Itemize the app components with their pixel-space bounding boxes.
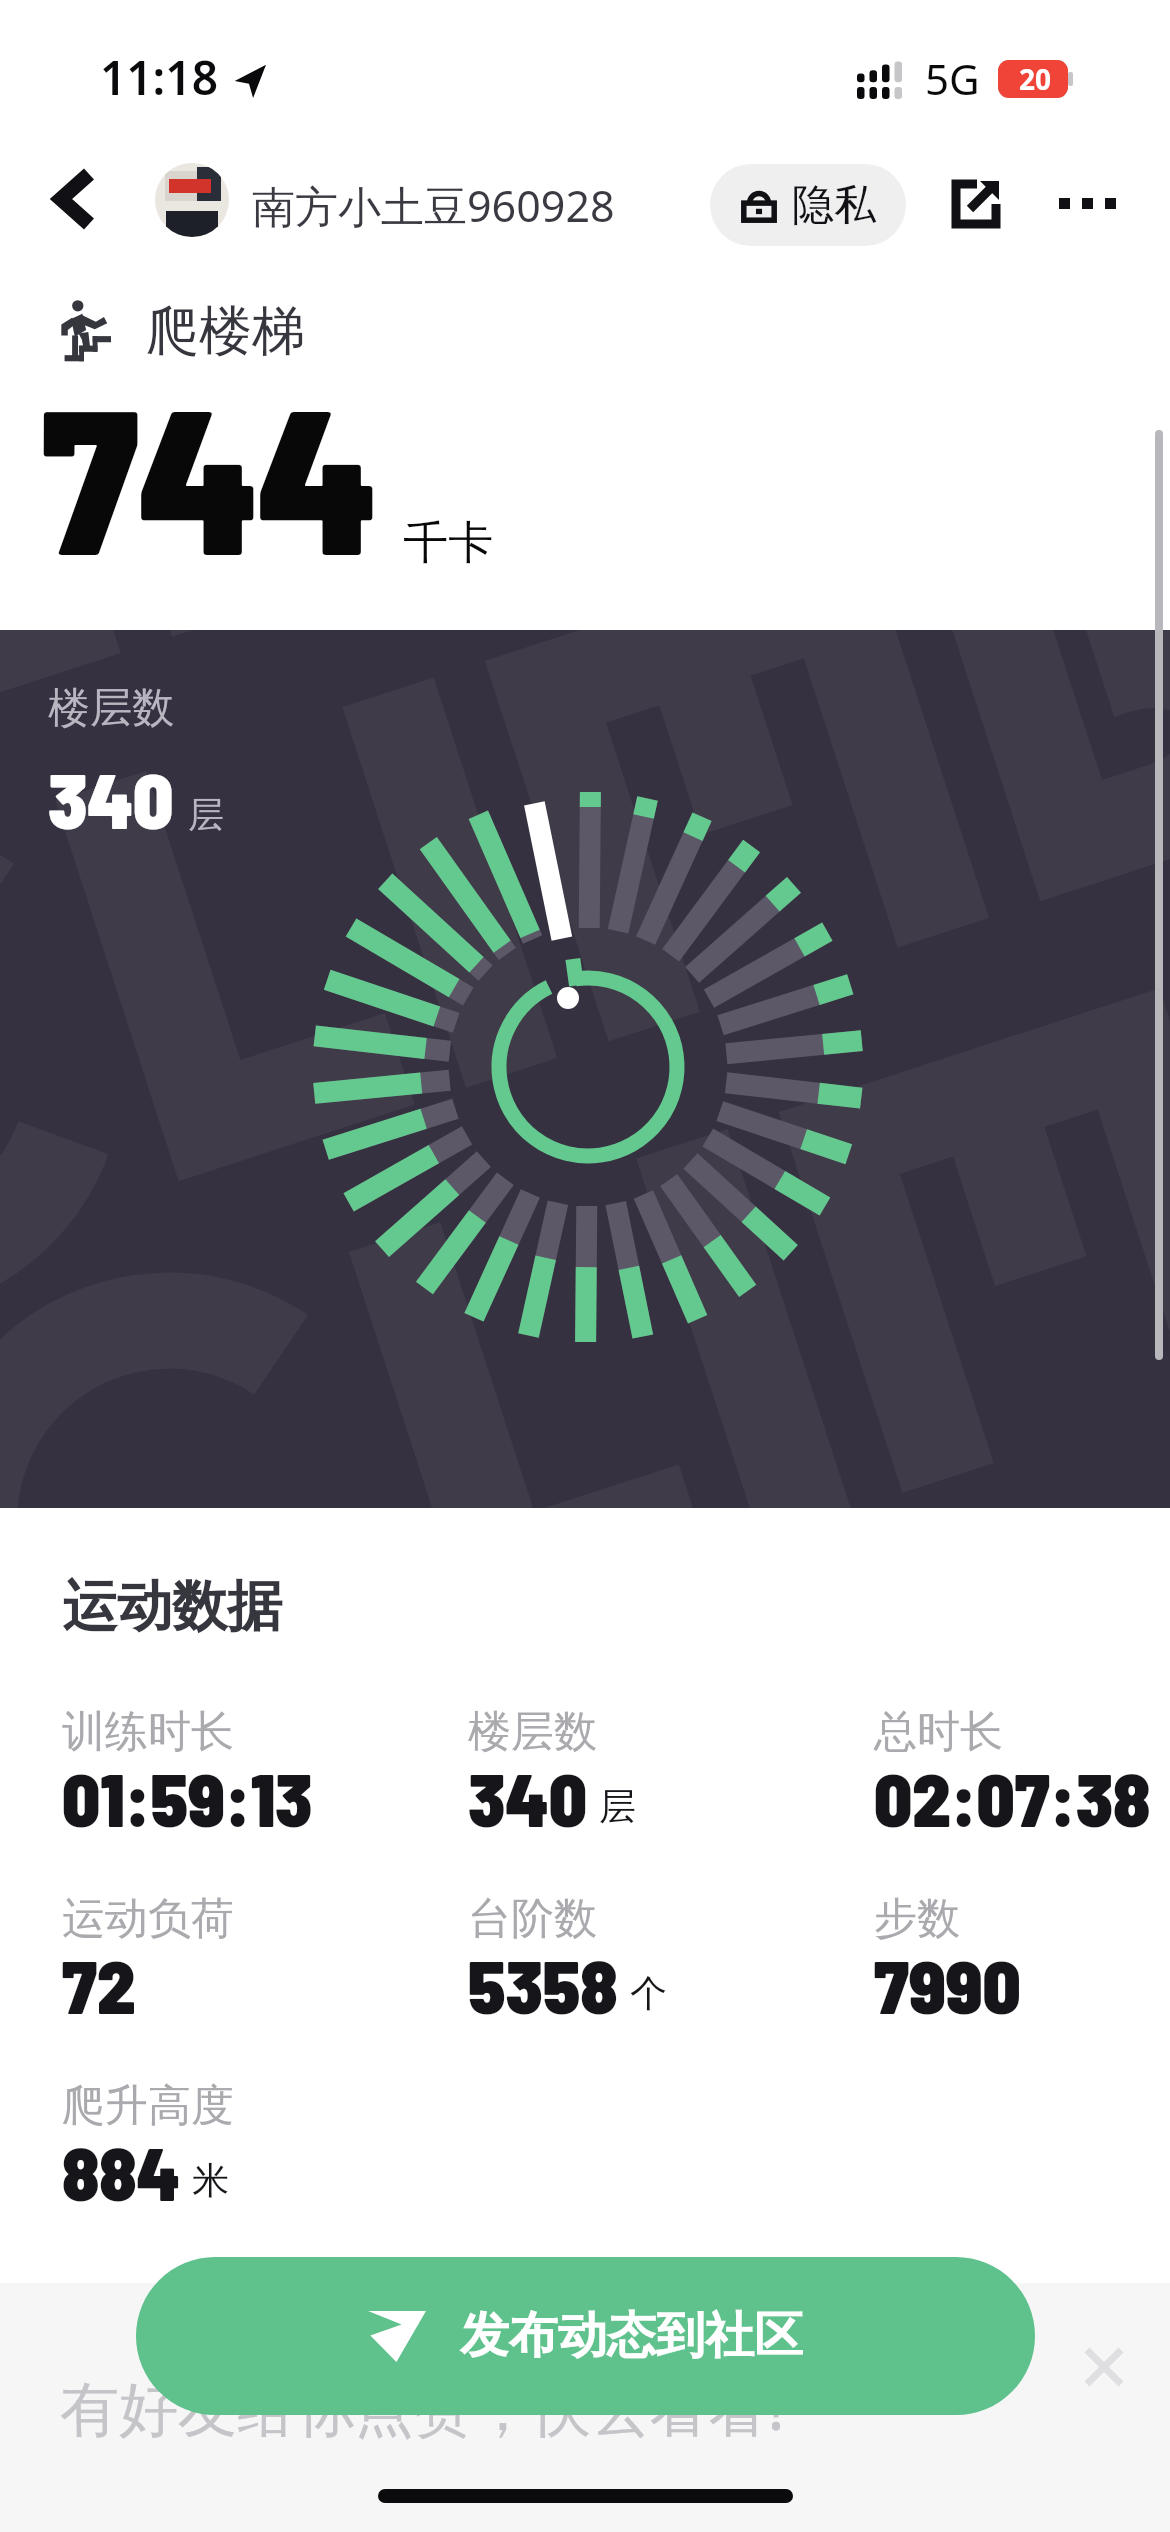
staticText: 爬升高度: [62, 2079, 234, 2133]
staticText: 爬楼梯: [146, 298, 305, 365]
staticText: 楼层数: [48, 682, 174, 735]
button[interactable]: Share: [942, 168, 1012, 238]
staticText: 11:18: [100, 46, 218, 109]
staticText: 02:07:38: [874, 1753, 1151, 1842]
staticText: 运动数据: [62, 1572, 282, 1641]
button[interactable]: 发布动态到社区: [136, 2257, 1035, 2415]
staticText: 01:59:13: [62, 1753, 313, 1842]
staticText: 5G: [925, 50, 980, 107]
button[interactable]: Close: [1064, 2327, 1144, 2407]
staticText: 总时长: [874, 1705, 1003, 1759]
staticText: 层: [599, 1783, 636, 1830]
staticText: 340: [468, 1753, 587, 1842]
staticText: 5358: [468, 1940, 618, 2029]
staticText: 步数: [874, 1892, 960, 1946]
button[interactable]: Profile photo: [155, 163, 229, 237]
staticText: 884: [62, 2127, 180, 2216]
button[interactable]: Back: [40, 164, 110, 234]
staticText: 72: [62, 1940, 136, 2029]
staticText: 个: [630, 1970, 667, 2017]
staticText: 千卡: [403, 515, 493, 572]
staticText: 层: [188, 792, 224, 837]
staticText: 744: [42, 350, 377, 596]
staticText: 340: [48, 751, 174, 845]
staticText: 隐私: [792, 179, 876, 232]
staticText: 20: [1019, 60, 1052, 98]
staticText: 南方小土豆960928: [252, 176, 615, 235]
staticText: 训练时长: [62, 1705, 234, 1759]
button[interactable]: More options: [1052, 168, 1122, 238]
staticText: 7990: [874, 1940, 1021, 2029]
staticText: 米: [192, 2157, 229, 2204]
staticText: 发布动态到社区: [460, 2305, 803, 2367]
staticText: 运动负荷: [62, 1892, 234, 1946]
button[interactable]: 隐私: [710, 164, 906, 246]
staticText: 台阶数: [468, 1892, 597, 1946]
staticText: 有好友给你点赞，快去看看!: [60, 2367, 785, 2448]
staticText: 楼层数: [468, 1705, 597, 1759]
